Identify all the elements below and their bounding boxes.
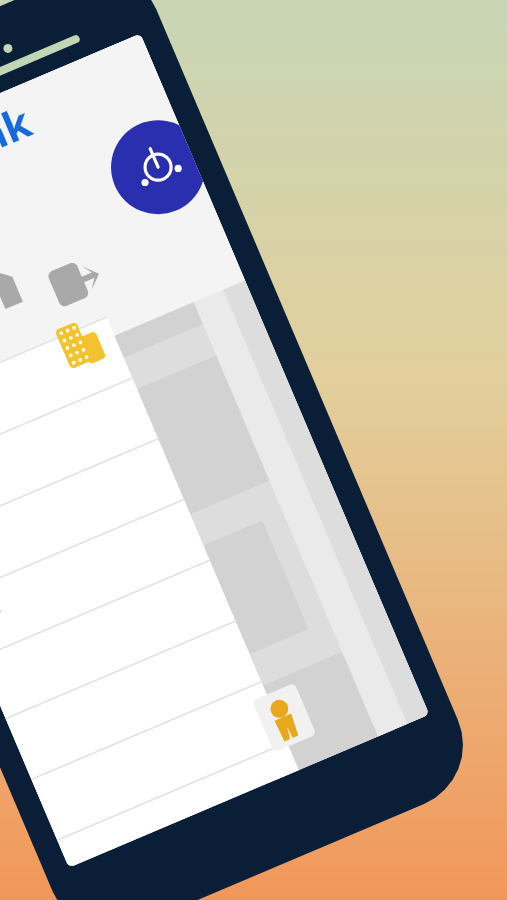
button[interactable] bbox=[0, 516, 140, 570]
button[interactable] bbox=[0, 408, 140, 462]
button[interactable] bbox=[0, 300, 140, 354]
button[interactable] bbox=[0, 354, 140, 408]
button[interactable] bbox=[0, 462, 140, 516]
